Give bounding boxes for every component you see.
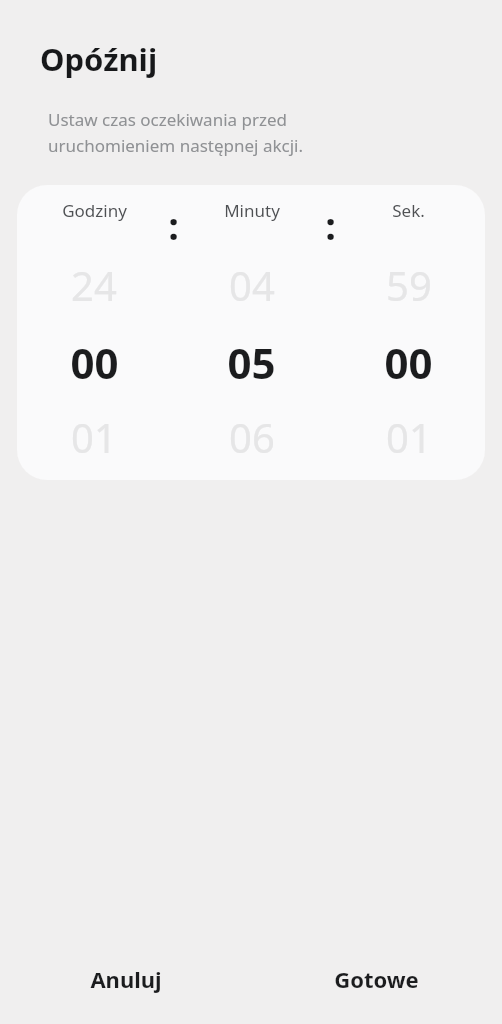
staticText: 00 (70, 334, 119, 382)
staticText: 24 (71, 258, 117, 306)
staticText: Anuluj (90, 964, 162, 994)
button[interactable]: Minuty (187, 199, 316, 458)
button[interactable]: Anuluj (0, 950, 251, 1008)
staticText: 59 (386, 258, 432, 306)
staticText: Sek. (392, 199, 425, 222)
staticText: : (325, 199, 336, 251)
staticText: 01 (386, 410, 432, 458)
staticText: 04 (229, 258, 275, 306)
button[interactable]: Godziny (29, 199, 159, 458)
staticText: 05 (227, 334, 276, 382)
button[interactable]: Sek. (344, 199, 473, 458)
staticText: 00 (384, 334, 433, 382)
staticText: Opóźnij (40, 38, 158, 80)
staticText: Godziny (62, 199, 127, 222)
staticText: : (168, 199, 179, 251)
staticText: Minuty (224, 199, 280, 222)
staticText: 06 (229, 410, 275, 458)
button[interactable]: Gotowe (251, 950, 502, 1008)
staticText: Gotowe (334, 964, 419, 994)
staticText: 01 (71, 410, 117, 458)
staticText: Ustaw czas oczekiwania przed uruchomieni… (48, 108, 304, 157)
